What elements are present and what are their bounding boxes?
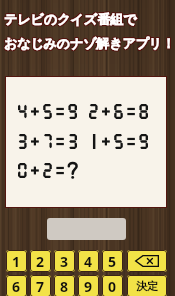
staticText: おなじみのナゾ解きアプリ！ [3,36,174,52]
button[interactable]: 決定 [127,275,167,296]
staticText: テレビのクイズ番組で [5,11,138,27]
staticText: おなじみのナゾ解きアプリ！ [3,37,174,53]
staticText: テレビのクイズ番組で [5,12,138,28]
staticText: 3 [60,252,69,271]
staticText: おなじみのナゾ解きアプリ！ [4,36,175,52]
button[interactable] [47,218,126,240]
staticText: おなじみのナゾ解きアプリ！ [4,35,175,51]
staticText: テレビのクイズ番組で [4,11,137,27]
staticText: 8 [60,277,69,296]
button[interactable]: 8 [54,275,75,296]
staticText: 6 [12,277,21,296]
staticText: 4 [84,252,93,271]
staticText: 9 [84,277,93,296]
staticText: 7 [36,277,45,296]
staticText: おなじみのナゾ解きアプリ！ [4,37,175,53]
staticText: テレビのクイズ番組で [4,10,137,26]
staticText: 1 [12,252,21,271]
button[interactable]: 0 [102,275,123,296]
staticText: 0 [108,277,117,296]
button[interactable]: 3 [54,250,75,272]
staticText: おなじみのナゾ解きアプリ！ [3,35,174,51]
staticText: テレビのクイズ番組で [4,12,137,28]
staticText: 2 [36,252,45,271]
button[interactable]: 6 [6,275,27,296]
staticText: テレビのクイズ番組で [3,11,136,27]
button[interactable]: Backspace [127,250,167,272]
staticText: おなじみのナゾ解きアプリ！ [5,37,175,53]
staticText: おなじみのナゾ解きアプリ！ [5,36,175,52]
staticText: テレビのクイズ番組で [3,10,136,26]
staticText: テレビのクイズ番組で [3,12,136,28]
button[interactable]: 4 [78,250,99,272]
staticText: 決定 [136,279,158,293]
button[interactable]: 7 [30,275,51,296]
button[interactable]: 5 [102,250,123,272]
staticText: テレビのクイズ番組で [5,10,138,26]
button[interactable]: 2 [30,250,51,272]
staticText: おなじみのナゾ解きアプリ！ [5,35,175,51]
staticText: 5 [108,252,117,271]
button[interactable]: 9 [78,275,99,296]
button[interactable]: 1 [6,250,27,272]
